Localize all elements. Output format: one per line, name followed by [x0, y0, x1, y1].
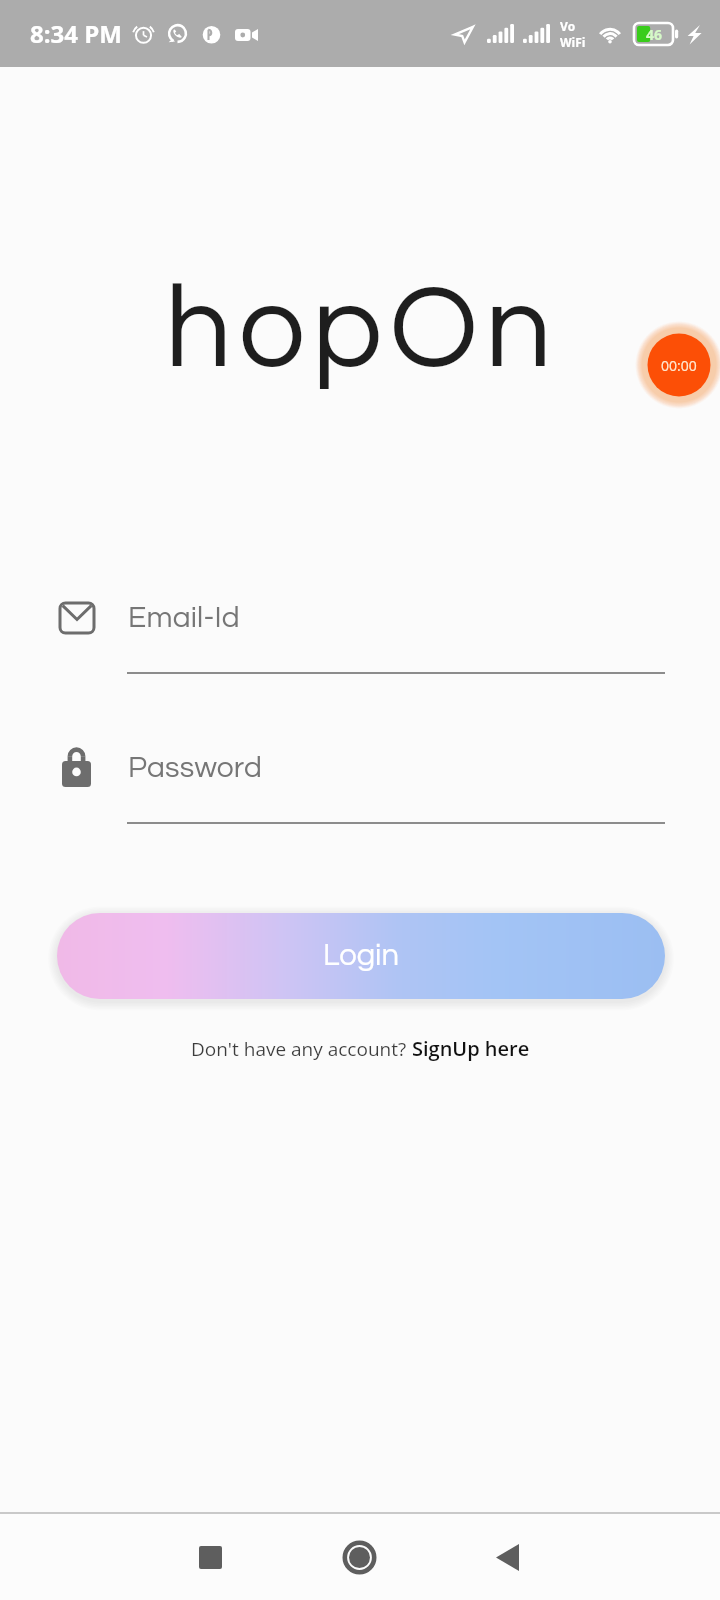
staticText: Don't have any account?	[191, 1036, 412, 1062]
staticText: SignUp here	[412, 1035, 530, 1062]
button[interactable]: Home	[309, 1514, 409, 1600]
staticText: hopOn	[165, 269, 559, 391]
button[interactable]: Back	[457, 1514, 557, 1600]
staticText: 46	[646, 25, 663, 44]
staticText: WiFi	[560, 34, 586, 50]
button[interactable]: Password	[128, 740, 548, 794]
button[interactable]: Email-Id	[128, 590, 548, 644]
staticText: Password	[128, 752, 263, 783]
staticText: Vo	[560, 18, 576, 34]
staticText: 8:34 PM	[30, 17, 122, 50]
staticText: Email-Id	[128, 602, 240, 633]
staticText: 00:00	[661, 356, 697, 375]
staticText: Login	[323, 940, 400, 972]
button[interactable]: SignUp here	[412, 1035, 530, 1062]
button[interactable]: Recent apps	[160, 1514, 260, 1600]
button[interactable]: Login	[57, 913, 665, 999]
